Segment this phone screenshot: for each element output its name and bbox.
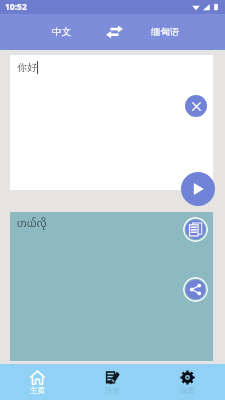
button[interactable]: 历史: [75, 364, 150, 400]
staticText: 缅甸语: [151, 26, 180, 38]
button[interactable]: 主页: [0, 364, 75, 400]
staticText: 你好: [17, 61, 37, 74]
button[interactable]: Swap languages: [88, 18, 138, 46]
button[interactable]: 设置: [150, 364, 225, 400]
button[interactable]: Share: [183, 277, 208, 302]
button[interactable]: 缅甸语: [138, 18, 192, 46]
staticText: 主页: [30, 386, 45, 395]
staticText: 10:52: [5, 1, 27, 13]
staticText: ဟယ်လို: [17, 216, 47, 230]
button[interactable]: Translate: [181, 172, 215, 206]
button[interactable]: Clear text: [185, 95, 207, 117]
staticText: 设置: [180, 386, 195, 395]
staticText: 历史: [105, 386, 120, 395]
staticText: 中文: [52, 26, 71, 38]
button[interactable]: Copy: [183, 217, 208, 242]
button[interactable]: 中文: [34, 18, 88, 46]
